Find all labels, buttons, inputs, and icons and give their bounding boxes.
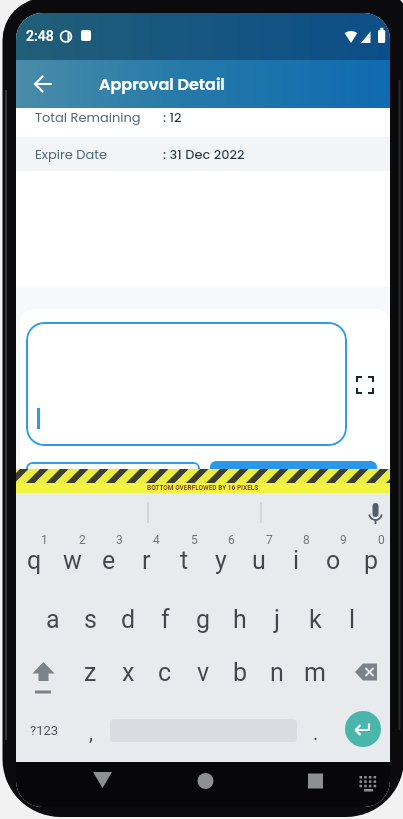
staticText: p bbox=[364, 546, 379, 575]
staticText: 5 bbox=[191, 533, 198, 547]
staticText: r bbox=[142, 546, 151, 575]
button[interactable]: g bbox=[16, 13, 96, 53]
button[interactable]: k bbox=[16, 13, 96, 53]
staticText: j bbox=[274, 605, 280, 634]
button[interactable]: s bbox=[16, 13, 96, 53]
button[interactable] bbox=[86, 766, 118, 798]
button[interactable] bbox=[210, 461, 377, 492]
staticText: Total Remaining bbox=[35, 108, 141, 126]
staticText: , bbox=[89, 721, 93, 744]
staticText: z bbox=[84, 658, 97, 687]
staticText: i bbox=[293, 546, 300, 575]
button[interactable]: . bbox=[16, 13, 96, 53]
staticText: 1 bbox=[41, 533, 48, 547]
button[interactable]: v bbox=[16, 13, 96, 53]
button[interactable] bbox=[352, 372, 378, 398]
staticText: c bbox=[158, 658, 172, 687]
button[interactable] bbox=[24, 65, 62, 103]
staticText: o bbox=[326, 546, 341, 575]
button[interactable]: j bbox=[16, 13, 96, 53]
staticText: : 12 bbox=[163, 108, 182, 126]
button[interactable]: h bbox=[16, 13, 96, 53]
button[interactable]: l bbox=[16, 13, 96, 53]
button[interactable]: , bbox=[16, 13, 96, 53]
button[interactable]: b bbox=[16, 13, 96, 53]
staticText: 7 bbox=[266, 533, 273, 547]
button[interactable]: e bbox=[16, 13, 96, 53]
staticText: Expire Date bbox=[35, 145, 108, 163]
staticText: 3 bbox=[116, 533, 123, 547]
button[interactable] bbox=[26, 462, 200, 492]
staticText: l bbox=[349, 605, 356, 634]
staticText: 9 bbox=[340, 533, 347, 547]
button[interactable]: y bbox=[16, 13, 96, 53]
button[interactable] bbox=[296, 766, 328, 798]
button[interactable]: w bbox=[16, 13, 96, 53]
button[interactable]: f bbox=[16, 13, 96, 53]
staticText: n bbox=[270, 658, 284, 687]
button[interactable]: x bbox=[16, 13, 96, 53]
staticText: 2 bbox=[79, 533, 86, 547]
button[interactable]: p bbox=[16, 13, 96, 53]
staticText: m bbox=[304, 658, 326, 687]
staticText: Approval Detail bbox=[99, 73, 225, 95]
button[interactable] bbox=[345, 711, 381, 747]
button[interactable]: n bbox=[16, 13, 96, 53]
staticText: x bbox=[122, 658, 135, 687]
button[interactable]: ?123 bbox=[16, 13, 96, 53]
button[interactable]: d bbox=[16, 13, 96, 53]
staticText: b bbox=[233, 658, 248, 687]
button[interactable]: i bbox=[16, 13, 96, 53]
staticText: h bbox=[233, 605, 247, 634]
staticText: a bbox=[46, 605, 60, 634]
button[interactable]: q bbox=[16, 13, 96, 53]
staticText: s bbox=[84, 605, 97, 634]
button[interactable]: z bbox=[16, 13, 96, 53]
staticText: : 31 Dec 2022 bbox=[163, 145, 245, 163]
staticText: t bbox=[180, 546, 189, 575]
staticText: u bbox=[252, 546, 266, 575]
button[interactable]: r bbox=[16, 13, 96, 53]
staticText: f bbox=[161, 605, 170, 634]
staticText: e bbox=[102, 546, 116, 575]
button[interactable]: o bbox=[16, 13, 96, 53]
staticText: 4 bbox=[153, 533, 160, 547]
button[interactable]: t bbox=[16, 13, 96, 53]
staticText: 0 bbox=[378, 533, 385, 547]
staticText: 2:48 bbox=[26, 28, 54, 44]
staticText: v bbox=[197, 658, 210, 687]
button[interactable]: u bbox=[16, 13, 96, 53]
staticText: BOTTOM OVERFLOWED BY 16 PIXELS bbox=[147, 484, 259, 492]
staticText: 8 bbox=[303, 533, 310, 547]
button[interactable]: a bbox=[16, 13, 96, 53]
staticText: ?123 bbox=[30, 723, 59, 738]
button[interactable]: c bbox=[16, 13, 96, 53]
button[interactable] bbox=[189, 766, 221, 798]
staticText: y bbox=[215, 546, 227, 575]
staticText: . bbox=[313, 721, 319, 744]
staticText: k bbox=[309, 605, 322, 634]
staticText: g bbox=[196, 605, 211, 634]
staticText: q bbox=[27, 546, 42, 575]
staticText: w bbox=[63, 546, 82, 575]
staticText: d bbox=[121, 605, 136, 634]
button[interactable] bbox=[26, 322, 347, 446]
staticText: 6 bbox=[228, 533, 235, 547]
button[interactable]: m bbox=[16, 13, 96, 53]
